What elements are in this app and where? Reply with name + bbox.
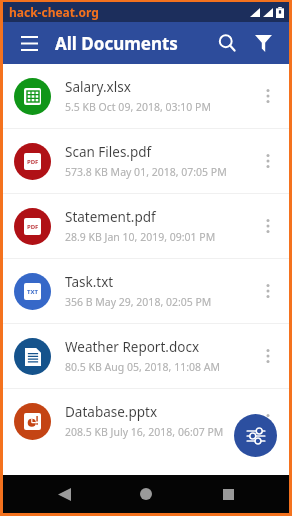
button[interactable]: More options for Database.pptx: [253, 406, 283, 436]
staticText: 28.9 KB Jan 10, 2019, 09:01 PM: [65, 230, 216, 244]
button[interactable]: Sort and filter options: [234, 414, 277, 457]
staticText: Database.pptx: [65, 403, 158, 421]
staticText: 356 B May 29, 2018, 02:05 PM: [65, 295, 212, 309]
staticText: PDF: [27, 223, 39, 231]
button[interactable]: TXT: [3, 259, 289, 323]
staticText: Statement.pdf: [65, 208, 156, 226]
staticText: hack-cheat.org: [9, 4, 99, 20]
staticText: 208.5 KB July 16, 2018, 06:07 PM: [65, 425, 224, 439]
button[interactable]: More options for Weather Report.docx: [253, 341, 283, 371]
button[interactable]: More options for Salary.xlsx: [253, 81, 283, 111]
button[interactable]: PDF: [3, 194, 289, 258]
button[interactable]: More options for Scan Files.pdf: [253, 146, 283, 176]
staticText: Weather Report.docx: [65, 338, 200, 356]
button[interactable]: Home: [129, 477, 163, 511]
staticText: Task.txt: [65, 273, 114, 291]
staticText: 5.5 KB Oct 09, 2018, 03:10 PM: [65, 100, 211, 114]
button[interactable]: Search: [209, 25, 245, 61]
button[interactable]: Back: [47, 477, 81, 511]
button[interactable]: Filter: [245, 25, 281, 61]
button[interactable]: PDF: [3, 129, 289, 193]
button[interactable]: Weather Report.docx: [3, 324, 289, 388]
button[interactable]: Salary.xlsx: [3, 64, 289, 128]
button[interactable]: More options for Statement.pdf: [253, 211, 283, 241]
button[interactable]: Open navigation menu: [13, 27, 45, 59]
staticText: All Documents: [55, 32, 209, 55]
staticText: TXT: [27, 288, 38, 296]
button[interactable]: Recent apps: [211, 477, 245, 511]
staticText: Scan Files.pdf: [65, 143, 152, 161]
staticText: PDF: [27, 158, 39, 166]
staticText: 573.8 KB May 01, 2018, 07:05 PM: [65, 165, 227, 179]
staticText: Salary.xlsx: [65, 78, 131, 96]
staticText: 80.5 KB Aug 05, 2018, 11:08 AM: [65, 360, 220, 374]
button[interactable]: More options for Task.txt: [253, 276, 283, 306]
button[interactable]: Database.pptx: [3, 389, 289, 453]
